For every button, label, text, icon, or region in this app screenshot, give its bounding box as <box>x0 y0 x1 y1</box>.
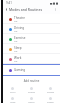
staticText: Add routine <box>3 79 60 83</box>
staticText: Driving <box>14 26 25 30</box>
staticText: Sound <box>28 91 35 94</box>
button[interactable]: Back <box>4 7 9 12</box>
staticText: Off <box>14 60 18 63</box>
staticText: Apps <box>10 101 16 103</box>
button[interactable]: Gaming <box>3 65 60 75</box>
button[interactable]: Exercise <box>3 34 60 44</box>
button[interactable]: Alarm <box>22 97 41 103</box>
button[interactable]: Sound <box>22 87 41 94</box>
staticText: 9:41 <box>6 1 12 5</box>
staticText: Off <box>14 30 18 33</box>
staticText: Work <box>14 56 22 60</box>
button[interactable]: Theatre <box>3 14 60 24</box>
button[interactable]: Apps <box>3 97 22 103</box>
staticText: Sleep <box>14 46 22 50</box>
button[interactable]: Power <box>41 97 60 103</box>
button[interactable]: Driving <box>3 24 60 34</box>
staticText: Off <box>14 20 18 23</box>
button[interactable]: Sleep <box>3 44 60 54</box>
button[interactable]: Work <box>3 54 60 64</box>
staticText: Off <box>14 40 18 43</box>
staticText: Exercise <box>14 36 26 40</box>
staticText: Screen <box>47 91 55 94</box>
button[interactable]: Screen <box>41 87 60 94</box>
staticText: Off <box>14 50 18 53</box>
staticText: Power <box>47 101 54 103</box>
button[interactable]: Wi-Fi <box>3 87 22 94</box>
staticText: Alarm <box>28 101 35 103</box>
staticText: Wi-Fi <box>10 91 16 94</box>
staticText: Modes and Routines <box>9 7 43 12</box>
staticText: Theatre <box>14 16 25 20</box>
button[interactable]: More options <box>53 7 58 12</box>
staticText: Gaming <box>14 68 26 72</box>
